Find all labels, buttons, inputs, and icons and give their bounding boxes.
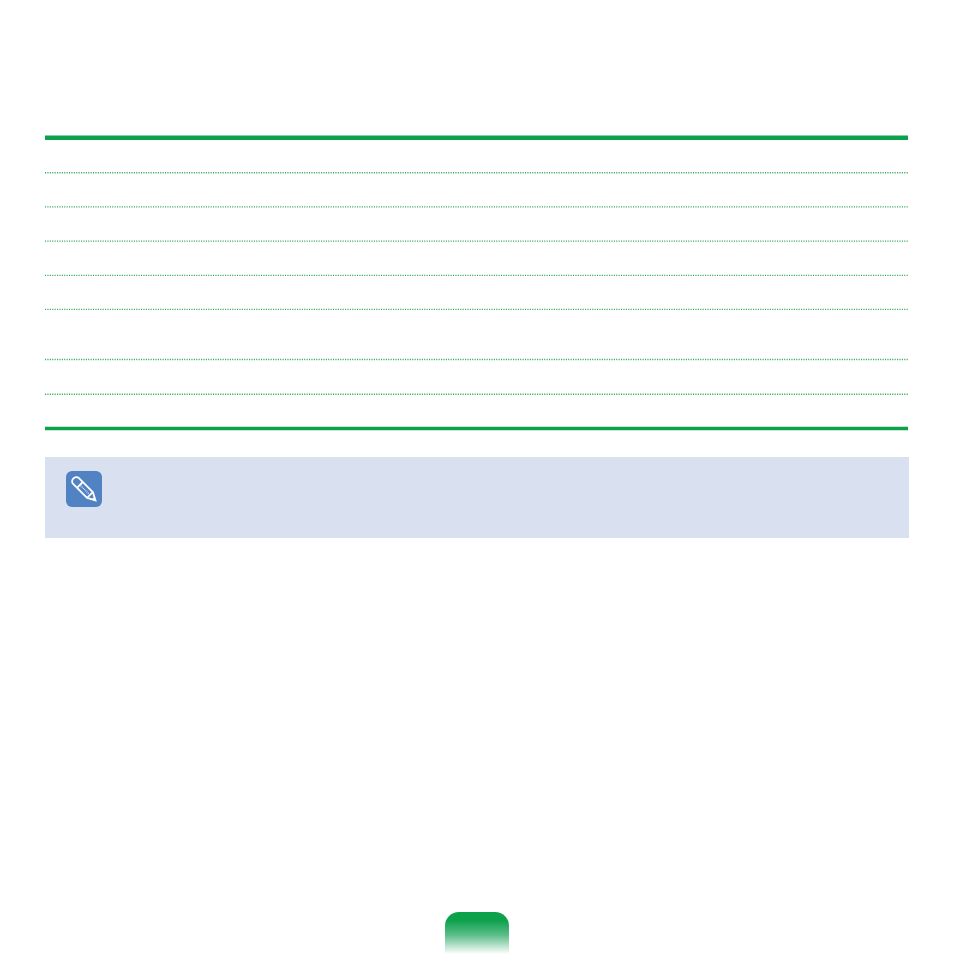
button[interactable] [45, 140, 908, 174]
button[interactable] [45, 242, 908, 276]
button[interactable]: Add [445, 912, 509, 954]
button[interactable] [45, 276, 908, 310]
button[interactable] [45, 310, 908, 360]
button[interactable] [45, 395, 908, 429]
button[interactable]: Edit [66, 471, 102, 507]
button[interactable] [45, 174, 908, 208]
button[interactable]: Edit [45, 457, 909, 538]
button[interactable] [45, 208, 908, 242]
button[interactable] [45, 360, 908, 395]
